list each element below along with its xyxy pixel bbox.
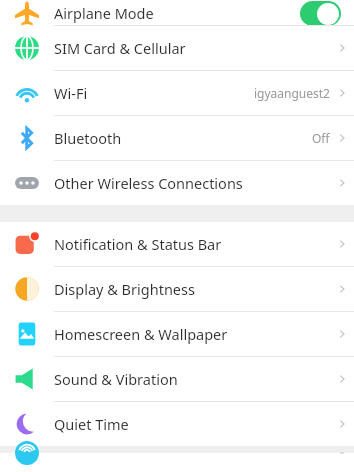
button[interactable]: Display & Brightness (0, 267, 354, 312)
staticText: Airplane Mode (54, 3, 154, 23)
button[interactable]: Quiet Time (0, 402, 354, 446)
staticText: Off (312, 130, 330, 146)
button[interactable]: Homescreen & Wallpaper (0, 312, 354, 357)
staticText: Notification & Status Bar (54, 234, 222, 254)
staticText: Homescreen & Wallpaper (54, 324, 228, 344)
button[interactable]: Airplane Mode (0, 0, 354, 45)
staticText: SIM Card & Cellular (54, 38, 186, 58)
staticText: Sound & Vibration (54, 369, 178, 389)
button[interactable]: Other Wireless Connections (0, 161, 354, 205)
button[interactable]: Airplane Mode toggle (300, 1, 341, 26)
button[interactable]: Wi-Fi (0, 71, 354, 116)
button[interactable]: SIM Card & Cellular (0, 26, 354, 71)
staticText: igyaanguest2 (254, 85, 330, 101)
staticText: Wi-Fi (54, 83, 88, 103)
staticText: Quiet Time (54, 414, 129, 434)
staticText: Display & Brightness (54, 279, 195, 299)
staticText: Other Wireless Connections (54, 173, 243, 193)
button[interactable]: Sound & Vibration (0, 357, 354, 402)
button[interactable]: Bluetooth (0, 116, 354, 161)
staticText: Bluetooth (54, 128, 122, 148)
button[interactable]: Notification & Status Bar (0, 222, 354, 267)
